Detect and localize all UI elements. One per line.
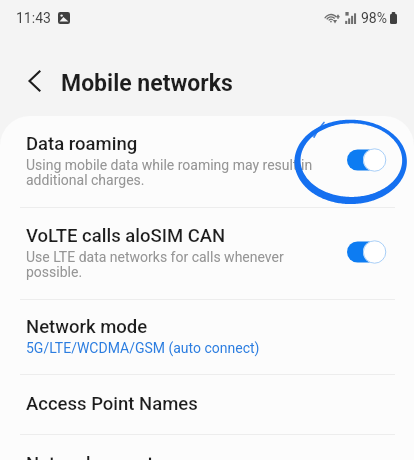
other: Wi-Fi [326,12,341,24]
button[interactable]: Toggle on [347,240,385,264]
staticText: 98% [361,10,387,26]
staticText: Using mobile data while roaming may resu… [26,157,313,189]
staticText: 5G/LTE/WCDMA/GSM (auto connect) [26,340,260,356]
staticText: Network mode [26,316,148,338]
staticText: Access Point Names [26,393,198,415]
button[interactable]: Toggle on [347,148,385,172]
staticText: Mobile networks [61,70,233,97]
button[interactable]: Back [20,67,48,95]
staticText: Data roaming [26,133,138,155]
button[interactable]: Access Point Names [0,375,414,434]
button[interactable]: Network operators [0,435,414,460]
other: Mobile signal [344,12,356,24]
button[interactable]: Data roaming [0,116,414,207]
button[interactable]: VoLTE calls aloSIM CAN [0,208,414,299]
staticText: Network operators [26,453,180,460]
staticText: VoLTE calls aloSIM CAN [26,225,226,247]
staticText: 11:43 [16,10,51,26]
button[interactable]: Network mode [0,300,414,374]
staticText: Use LTE data networks for calls whenever… [26,249,284,281]
